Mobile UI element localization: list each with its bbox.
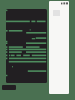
button[interactable]: Terminal output — [6, 9, 47, 83]
button[interactable]: Taskbar — [2, 85, 16, 90]
button[interactable]: Phone preview — [49, 1, 69, 94]
